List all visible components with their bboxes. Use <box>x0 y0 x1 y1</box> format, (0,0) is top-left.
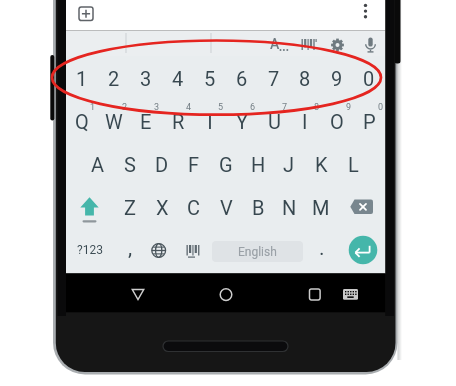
button[interactable]: V <box>210 186 242 228</box>
button[interactable]: R <box>162 100 194 142</box>
staticText: 7 <box>282 102 288 113</box>
staticText: H <box>251 153 266 176</box>
staticText: Y <box>236 110 249 133</box>
staticText: A <box>91 153 105 176</box>
button[interactable] <box>74 186 105 228</box>
button[interactable]: . <box>310 227 334 269</box>
button[interactable]: H <box>242 143 274 185</box>
staticText: V <box>220 196 233 219</box>
button[interactable]: 3 <box>130 57 162 99</box>
button[interactable]: I <box>289 100 321 142</box>
staticText: 1 <box>76 67 88 90</box>
button[interactable]: U <box>258 100 290 142</box>
staticText: 3 <box>154 102 160 113</box>
staticText: 5 <box>218 102 224 113</box>
button[interactable]: E <box>130 100 162 142</box>
button[interactable]: S <box>114 143 146 185</box>
staticText: , <box>128 236 133 261</box>
staticText: 4 <box>172 67 184 90</box>
staticText: English <box>238 245 277 259</box>
staticText: U <box>268 110 281 133</box>
staticText: T <box>204 110 216 133</box>
button[interactable] <box>296 34 317 55</box>
button[interactable] <box>123 279 153 309</box>
button[interactable] <box>327 34 348 55</box>
staticText: 9 <box>331 67 343 90</box>
button[interactable] <box>348 186 379 228</box>
button[interactable]: 6 <box>226 57 258 99</box>
button[interactable]: T <box>194 100 226 142</box>
button[interactable]: G <box>210 143 242 185</box>
staticText: 2 <box>108 67 120 90</box>
button[interactable]: Q <box>66 100 98 142</box>
button[interactable]: 4 <box>162 57 194 99</box>
staticText: L <box>348 153 359 176</box>
button[interactable]: ?123 <box>70 229 110 271</box>
staticText: P <box>363 110 376 133</box>
button[interactable]: 1 <box>66 57 98 99</box>
button[interactable]: 2 <box>98 57 130 99</box>
staticText: R <box>172 110 185 133</box>
staticText: 0 <box>378 102 384 113</box>
staticText: N <box>282 196 297 219</box>
button[interactable]: A <box>82 143 114 185</box>
button[interactable]: B <box>242 186 274 228</box>
button[interactable]: English <box>212 241 303 262</box>
staticText: 0 <box>363 67 375 90</box>
staticText: M <box>312 196 330 219</box>
button[interactable]: K <box>305 143 337 185</box>
staticText: S <box>124 153 136 176</box>
button[interactable]: 0 <box>353 57 385 99</box>
staticText: W <box>105 110 123 133</box>
button[interactable]: 9 <box>321 57 353 99</box>
button[interactable]: P <box>353 100 385 142</box>
button[interactable]: M <box>305 186 337 228</box>
button[interactable]: J <box>273 143 305 185</box>
button[interactable]: , <box>118 227 142 269</box>
staticText: 9 <box>346 102 352 113</box>
staticText: K <box>315 153 328 176</box>
staticText: 3 <box>140 67 152 90</box>
button[interactable] <box>358 2 373 22</box>
staticText: 8 <box>299 67 311 90</box>
staticText: B <box>252 196 265 219</box>
staticText: O <box>330 110 344 133</box>
button[interactable]: N <box>273 186 305 228</box>
button[interactable]: L <box>337 143 369 185</box>
staticText: 5 <box>204 67 216 90</box>
staticText: D <box>155 153 169 176</box>
button[interactable]: O <box>321 100 353 142</box>
button[interactable] <box>178 229 206 271</box>
staticText: G <box>219 153 233 176</box>
staticText: 8 <box>314 102 320 113</box>
button[interactable]: 7 <box>258 57 290 99</box>
button[interactable]: W <box>98 100 130 142</box>
staticText: 7 <box>268 67 280 90</box>
staticText: Z <box>124 196 136 219</box>
button[interactable] <box>349 236 378 265</box>
staticText: . <box>319 236 325 261</box>
staticText: ?123 <box>77 243 103 257</box>
staticText: 1 <box>90 102 96 113</box>
button[interactable]: F <box>178 143 210 185</box>
staticText: I <box>302 110 308 133</box>
staticText: Q <box>75 110 89 133</box>
button[interactable]: 8 <box>289 57 321 99</box>
button[interactable]: D <box>146 143 178 185</box>
button[interactable]: C <box>178 186 210 228</box>
staticText: 6 <box>236 67 248 90</box>
button[interactable] <box>79 7 93 21</box>
button[interactable] <box>336 280 364 308</box>
button[interactable]: Y <box>226 100 258 142</box>
button[interactable]: X <box>146 186 178 228</box>
button[interactable] <box>211 279 241 309</box>
staticText: J <box>283 153 295 176</box>
staticText: C <box>187 196 201 219</box>
button[interactable] <box>145 229 173 271</box>
button[interactable]: A <box>268 36 281 52</box>
button[interactable] <box>360 34 381 55</box>
button[interactable]: 5 <box>194 57 226 99</box>
staticText: 6 <box>250 102 256 113</box>
button[interactable] <box>300 279 330 309</box>
button[interactable]: Z <box>114 186 146 228</box>
